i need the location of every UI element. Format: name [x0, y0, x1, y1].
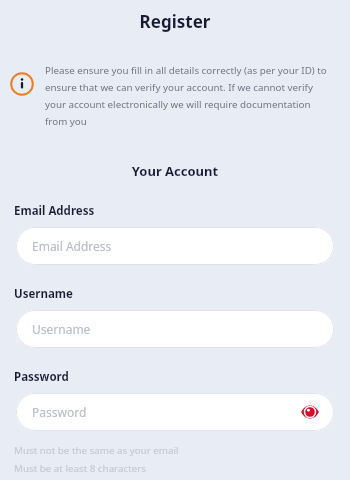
staticText: Password	[14, 369, 69, 385]
staticText: Must not be the same as your email	[14, 444, 179, 457]
staticText: Email Address	[14, 203, 95, 219]
staticText: Your Account	[0, 162, 350, 180]
button[interactable]: Show password	[298, 400, 322, 424]
staticText: Username	[14, 286, 73, 302]
staticText: Username	[32, 321, 322, 337]
staticText: Register	[0, 10, 350, 33]
button[interactable]: Password	[16, 393, 334, 431]
button[interactable]: Username	[16, 310, 334, 348]
staticText: Email Address	[32, 238, 322, 254]
staticText: Please ensure you fill in all details co…	[45, 64, 334, 128]
staticText: Password	[32, 404, 298, 420]
button[interactable]: Email Address	[16, 227, 334, 265]
staticText: Must be at least 8 characters	[14, 462, 146, 475]
